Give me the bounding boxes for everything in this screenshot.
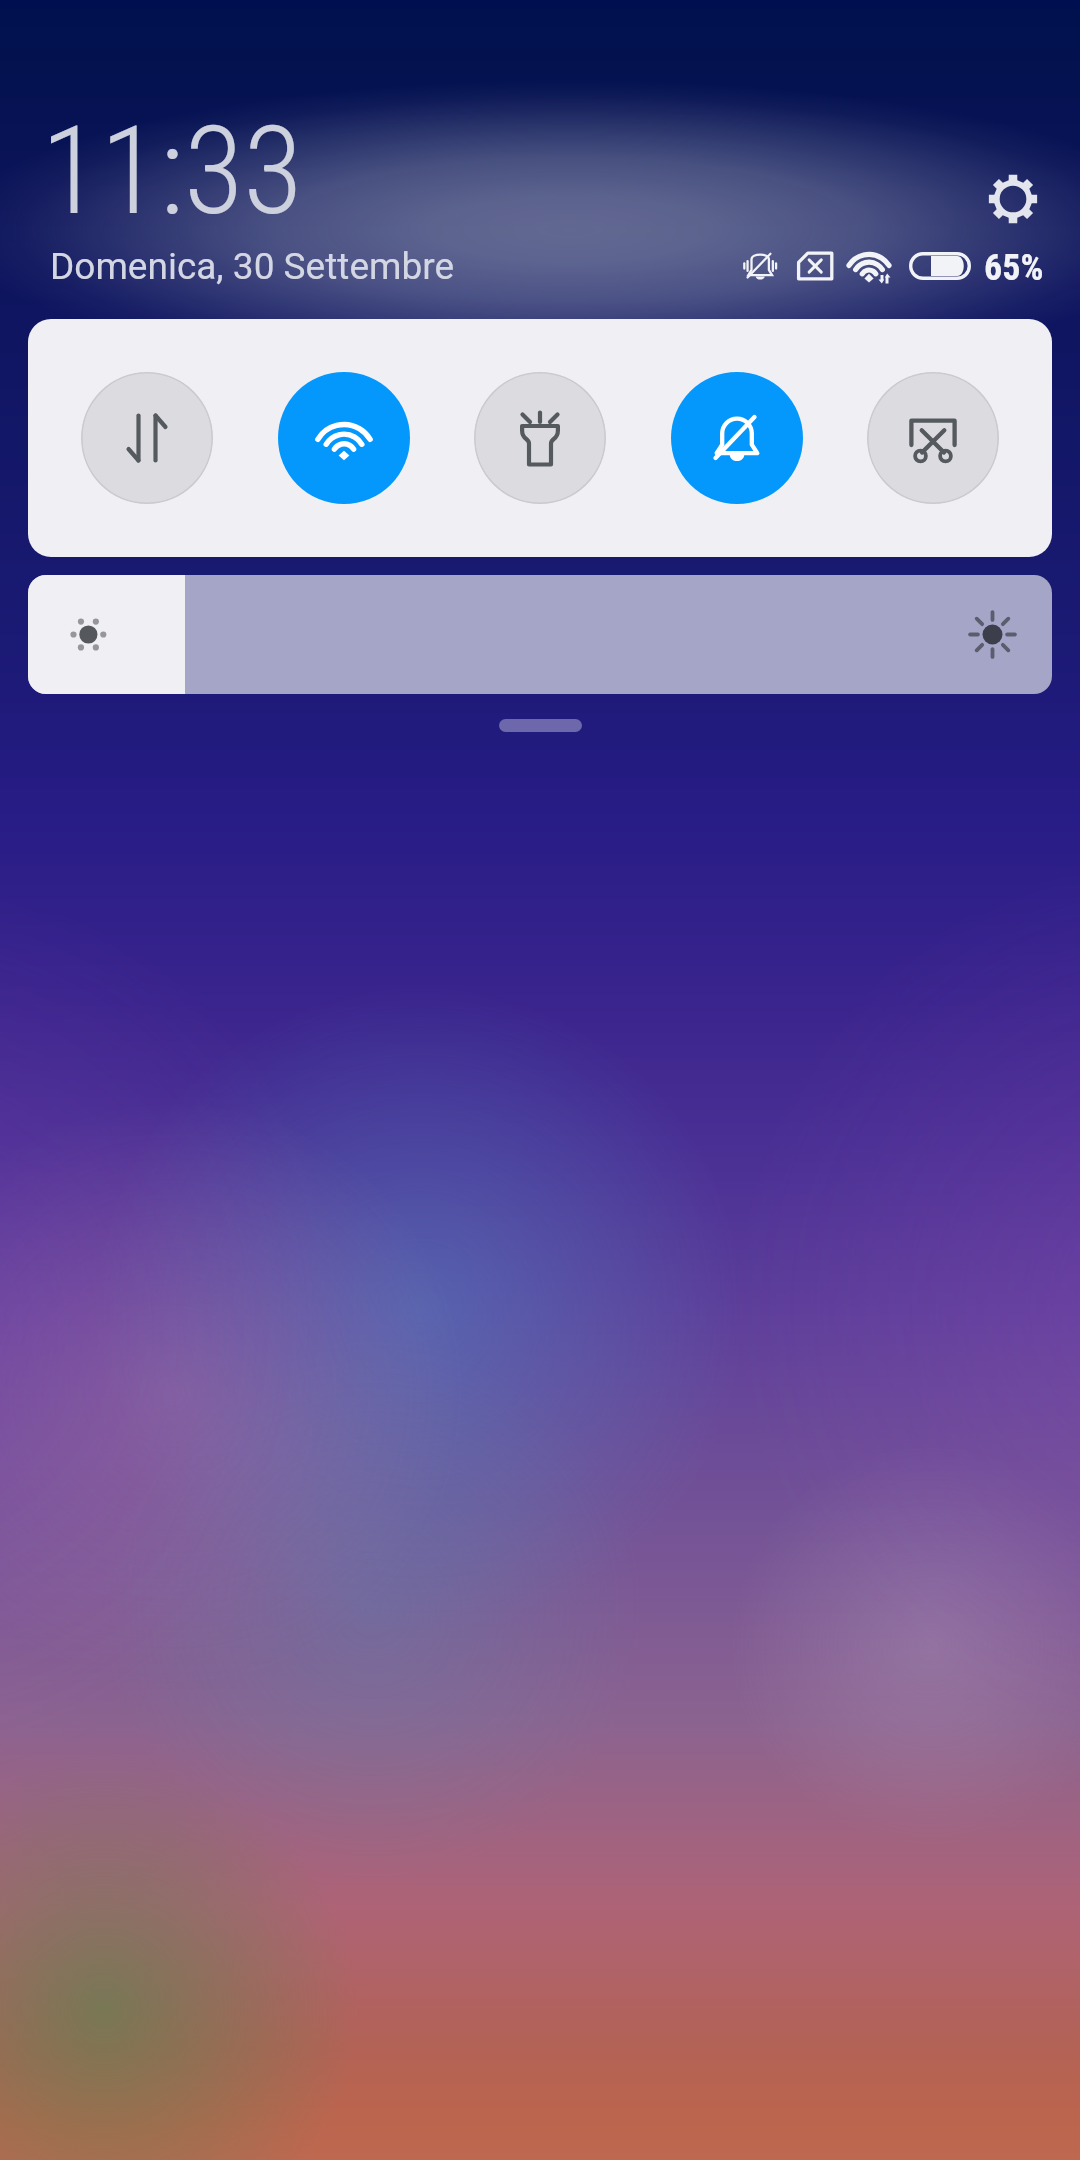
button[interactable]: Settings: [965, 151, 1061, 247]
button[interactable]: Mobile data: [81, 372, 213, 504]
button[interactable]: Silent mode: [671, 372, 803, 504]
staticText: 11:33: [41, 100, 303, 243]
staticText: Domenica, 30 Settembre: [50, 245, 455, 288]
button[interactable]: Expand quick settings: [499, 719, 582, 732]
button[interactable]: Screenshot: [867, 372, 999, 504]
button[interactable]: Flashlight: [474, 372, 606, 504]
button[interactable]: Wi-Fi: [278, 372, 410, 504]
button[interactable]: Brightness: [28, 575, 1052, 694]
staticText: 65%: [984, 247, 1044, 289]
